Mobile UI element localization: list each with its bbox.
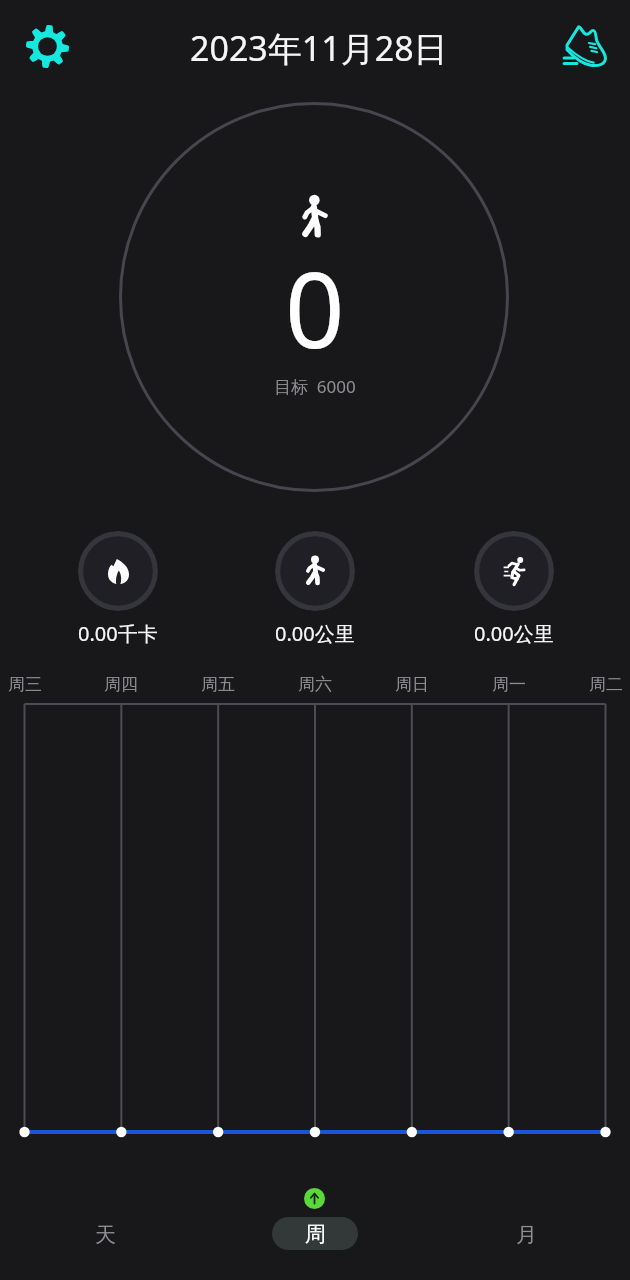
button[interactable]: 0.00公里: [454, 531, 574, 645]
button[interactable]: 月: [466, 1210, 586, 1260]
staticText: 周一: [492, 674, 526, 695]
button[interactable]: 0.00千卡: [58, 531, 178, 645]
staticText: 月: [516, 1222, 537, 1248]
staticText: 周二: [589, 674, 623, 695]
staticText: 0.00千卡: [78, 620, 158, 646]
staticText: 0.00公里: [474, 620, 554, 646]
staticText: 周三: [8, 674, 42, 695]
button[interactable]: Running history: [554, 14, 618, 78]
staticText: 0: [285, 237, 345, 379]
staticText: 目标 6000: [274, 375, 356, 397]
staticText: 2023年11月28日: [190, 25, 448, 71]
staticText: 周四: [104, 674, 138, 695]
staticText: 周日: [395, 674, 429, 695]
staticText: 周: [305, 1221, 326, 1247]
button[interactable]: 周: [272, 1217, 358, 1250]
staticText: 天: [95, 1222, 116, 1248]
staticText: 周五: [201, 674, 235, 695]
staticText: 周六: [298, 674, 332, 695]
staticText: 0.00公里: [275, 620, 355, 646]
button[interactable]: 0.00公里: [255, 531, 375, 645]
button[interactable]: Settings: [15, 14, 79, 78]
button[interactable]: 天: [45, 1210, 165, 1260]
